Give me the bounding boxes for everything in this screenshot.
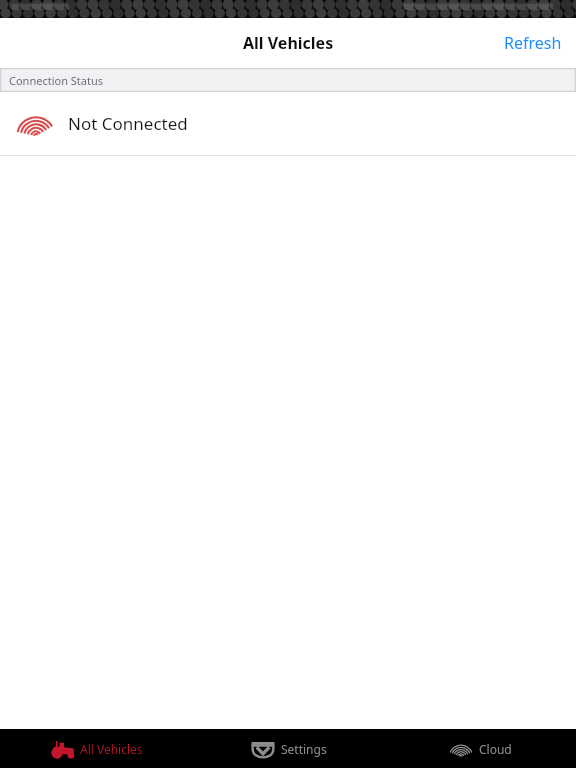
button[interactable]: Settings <box>192 729 384 768</box>
button[interactable]: All Vehicles <box>0 729 192 768</box>
staticText: Connection Status <box>9 73 104 88</box>
staticText: Refresh <box>504 32 562 54</box>
staticText: Cloud <box>479 741 512 757</box>
button[interactable]: Not Connected <box>0 92 576 155</box>
staticText: All Vehicles <box>80 741 143 757</box>
staticText: All Vehicles <box>243 32 334 54</box>
staticText: Settings <box>281 741 327 757</box>
button[interactable]: Refresh <box>490 20 576 66</box>
staticText: Not Connected <box>68 112 188 135</box>
button[interactable]: Cloud <box>384 729 576 768</box>
